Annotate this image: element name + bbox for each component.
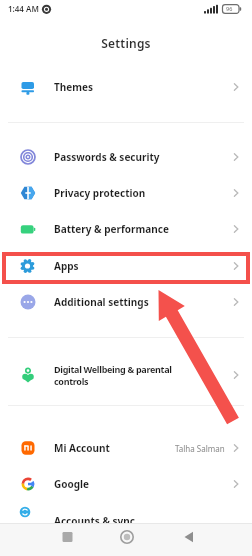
button[interactable] bbox=[168, 523, 252, 556]
button[interactable] bbox=[0, 523, 84, 556]
button[interactable]: Mi Account bbox=[0, 430, 252, 466]
staticText: Talha Salman bbox=[175, 443, 225, 454]
staticText: Battery & performance bbox=[54, 222, 169, 236]
button[interactable]: Privacy protection bbox=[0, 175, 252, 211]
button[interactable]: Passwords & security bbox=[0, 139, 252, 175]
staticText: Accounts & sync bbox=[54, 514, 135, 528]
button[interactable]: Digital Wellbeing & parental controls bbox=[0, 353, 252, 397]
staticText: Google bbox=[54, 477, 90, 491]
staticText: Privacy protection bbox=[54, 186, 146, 200]
button[interactable]: Themes bbox=[0, 69, 252, 105]
button[interactable]: Google bbox=[0, 466, 252, 502]
staticText: Themes bbox=[54, 80, 93, 94]
button[interactable]: Additional settings bbox=[0, 284, 252, 320]
staticText: 1:44 AM bbox=[8, 3, 39, 14]
button[interactable]: Accounts & sync bbox=[0, 503, 252, 539]
staticText: Mi Account bbox=[54, 441, 110, 455]
staticText: Additional settings bbox=[54, 295, 149, 309]
staticText: Digital Wellbeing & parental controls bbox=[54, 363, 172, 388]
staticText: 96 bbox=[226, 5, 233, 12]
button[interactable]: Battery & performance bbox=[0, 211, 252, 247]
staticText: Settings bbox=[101, 35, 151, 51]
staticText: Apps bbox=[54, 259, 79, 273]
staticText: Passwords & security bbox=[54, 150, 160, 164]
button[interactable] bbox=[84, 523, 168, 556]
button[interactable]: Apps bbox=[0, 248, 252, 284]
